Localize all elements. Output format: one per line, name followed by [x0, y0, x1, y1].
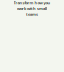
staticText: Transform how you [13, 0, 50, 5]
staticText: teams [26, 11, 38, 17]
staticText: work with small [17, 6, 47, 11]
